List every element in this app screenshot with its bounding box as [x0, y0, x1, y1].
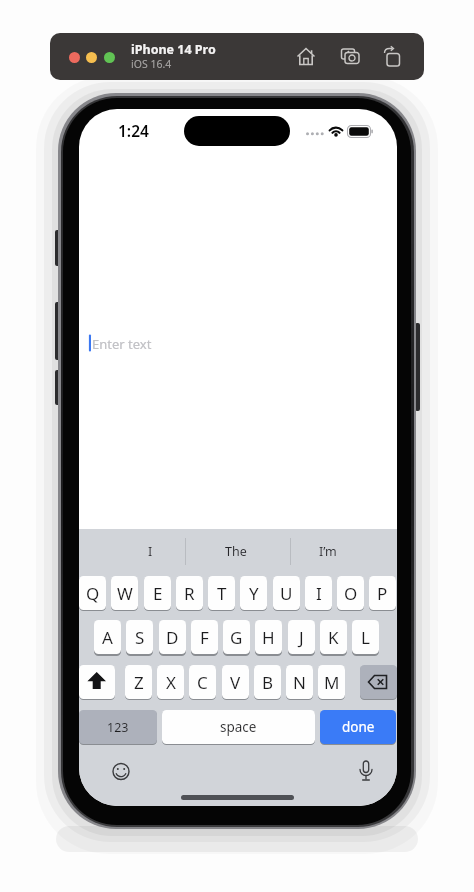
staticText: P [377, 582, 388, 605]
staticText: H [262, 626, 275, 649]
staticText: Q [86, 582, 100, 605]
button[interactable]: U [273, 576, 300, 610]
button[interactable] [338, 44, 364, 70]
button[interactable] [79, 665, 115, 699]
button[interactable]: N [286, 665, 313, 699]
staticText: R [184, 582, 195, 605]
staticText: iOS 16.4 [131, 57, 172, 71]
button[interactable]: space [162, 710, 315, 744]
button[interactable]: Enter text [92, 335, 212, 352]
button[interactable]: R [176, 576, 203, 610]
staticText: K [328, 626, 339, 649]
staticText: O [344, 582, 358, 605]
button[interactable] [104, 52, 115, 63]
button[interactable]: D [159, 620, 186, 654]
button[interactable]: O [337, 576, 364, 610]
button[interactable]: Y [240, 576, 267, 610]
staticText: T [217, 582, 227, 605]
staticText: W [117, 582, 133, 605]
staticText: E [153, 582, 163, 605]
staticText: The [225, 543, 247, 560]
staticText: I [148, 543, 153, 560]
staticText: M [324, 671, 340, 694]
button[interactable]: I’m [312, 540, 344, 562]
button[interactable]: Q [79, 576, 106, 610]
staticText: Z [134, 671, 144, 694]
button[interactable] [86, 52, 97, 63]
staticText: Enter text [92, 335, 152, 352]
staticText: C [197, 671, 208, 694]
staticText: D [166, 626, 179, 649]
staticText: B [262, 671, 274, 694]
staticText: L [361, 626, 370, 649]
staticText: G [230, 626, 243, 649]
button[interactable]: iPhone 14 Pro [50, 33, 424, 80]
button[interactable]: E [144, 576, 171, 610]
staticText: F [200, 626, 209, 649]
button[interactable]: X [157, 665, 184, 699]
button[interactable] [69, 52, 80, 63]
staticText: U [280, 582, 293, 605]
staticText: J [299, 626, 304, 649]
button[interactable] [293, 44, 319, 70]
button[interactable]: P [369, 576, 396, 610]
button[interactable]: I [134, 540, 166, 562]
button[interactable]: G [223, 620, 250, 654]
button[interactable]: K [320, 620, 347, 654]
staticText: Y [249, 582, 259, 605]
staticText: 123 [107, 719, 129, 736]
button[interactable]: The [220, 540, 252, 562]
button[interactable]: A [94, 620, 121, 654]
button[interactable]: F [191, 620, 218, 654]
staticText: done [342, 718, 375, 736]
button[interactable]: 123 [79, 710, 157, 744]
staticText: space [220, 718, 257, 736]
button[interactable] [360, 665, 397, 699]
button[interactable]: M [318, 665, 345, 699]
button[interactable]: S [126, 620, 153, 654]
button[interactable]: J [288, 620, 315, 654]
button[interactable]: Z [125, 665, 152, 699]
button[interactable]: W [111, 576, 138, 610]
button[interactable]: I [305, 576, 332, 610]
button[interactable]: T [208, 576, 235, 610]
staticText: X [166, 671, 176, 694]
button[interactable]: L [352, 620, 379, 654]
staticText: N [293, 671, 306, 694]
staticText: V [230, 671, 241, 694]
button[interactable]: V [222, 665, 249, 699]
staticText: S [135, 626, 145, 649]
button[interactable]: done [320, 710, 396, 744]
staticText: I [316, 582, 322, 605]
button[interactable]: H [255, 620, 282, 654]
staticText: 1:24 [118, 120, 149, 138]
staticText: I’m [319, 543, 337, 560]
staticText: iPhone 14 Pro [131, 41, 216, 57]
button[interactable]: B [254, 665, 281, 699]
button[interactable] [380, 44, 406, 70]
button[interactable]: C [189, 665, 216, 699]
staticText: A [102, 626, 113, 649]
